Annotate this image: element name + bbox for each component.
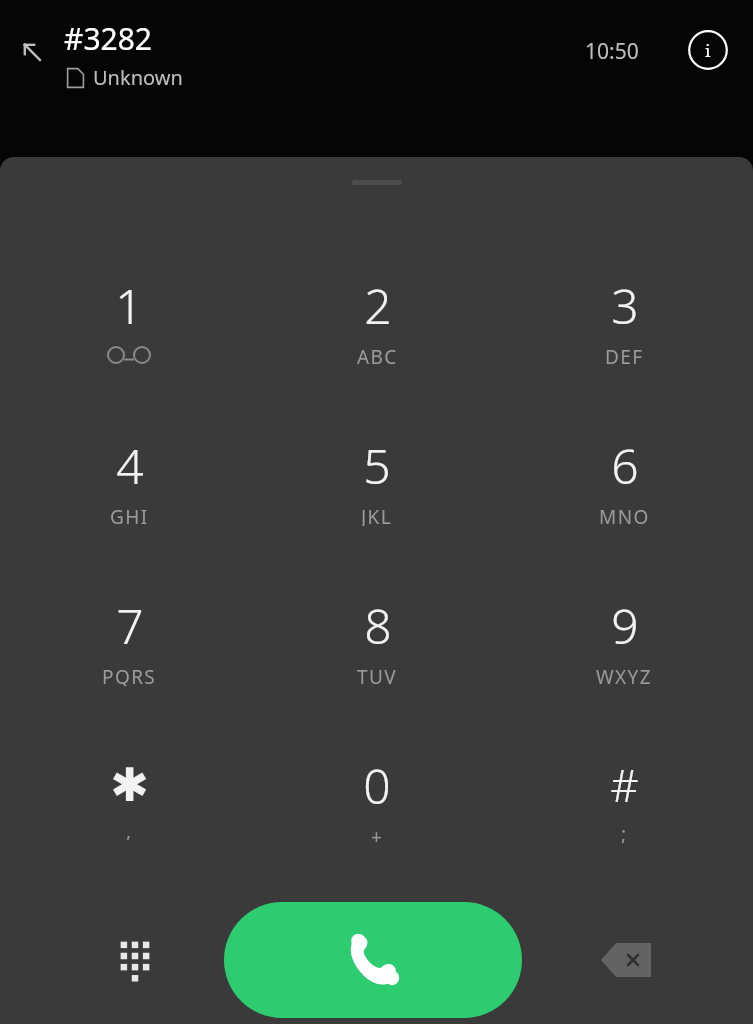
staticText: Unknown: [93, 64, 183, 91]
staticText: 3: [611, 273, 639, 338]
staticText: ✱: [110, 758, 149, 812]
button[interactable]: 8: [259, 559, 495, 719]
staticText: PQRS: [102, 664, 157, 686]
button[interactable]: 1: [11, 239, 247, 399]
staticText: i: [705, 39, 711, 62]
button[interactable]: 7: [11, 559, 247, 719]
staticText: ;: [621, 821, 628, 843]
button[interactable]: 4: [11, 399, 247, 559]
staticText: 5: [363, 433, 391, 498]
staticText: 9: [611, 593, 639, 658]
staticText: 7: [116, 593, 144, 658]
button[interactable]: 9: [506, 559, 742, 719]
button[interactable]: Call details: [687, 29, 729, 71]
staticText: 8: [364, 593, 392, 658]
staticText: WXYZ: [596, 664, 653, 686]
button[interactable]: Call: [224, 902, 522, 1018]
staticText: 2: [364, 273, 392, 338]
staticText: TUV: [357, 664, 398, 686]
button[interactable]: Outgoing call: [14, 34, 50, 70]
staticText: JKL: [361, 504, 393, 526]
button[interactable]: ✱: [11, 719, 247, 879]
button[interactable]: 2: [259, 239, 495, 399]
staticText: 1: [115, 273, 143, 338]
button[interactable]: Show keypad: [100, 925, 170, 995]
staticText: 6: [611, 433, 639, 498]
button[interactable]: 0: [259, 719, 495, 879]
staticText: ABC: [357, 344, 398, 366]
button[interactable]: Backspace: [591, 925, 661, 995]
staticText: 0: [363, 753, 391, 818]
staticText: #3282: [64, 18, 153, 59]
staticText: ,: [126, 818, 133, 840]
staticText: DEF: [605, 344, 644, 366]
staticText: 4: [116, 433, 144, 498]
button[interactable]: 6: [506, 399, 742, 559]
button[interactable]: 3: [506, 239, 742, 399]
button[interactable]: #: [506, 719, 742, 879]
staticText: 10:50: [585, 37, 639, 66]
staticText: +: [371, 824, 384, 846]
staticText: MNO: [599, 504, 650, 526]
staticText: GHI: [110, 504, 149, 526]
button[interactable]: 5: [259, 399, 495, 559]
staticText: #: [610, 755, 639, 815]
